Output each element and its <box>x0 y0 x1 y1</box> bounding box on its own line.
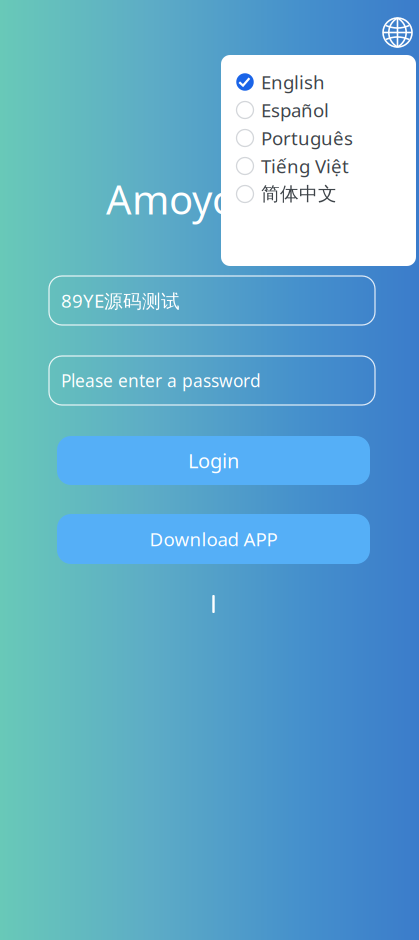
staticText: Español <box>261 98 329 122</box>
button[interactable]: Español <box>236 96 404 124</box>
staticText: Login <box>188 447 239 474</box>
staticText: Tiếng Việt <box>261 154 349 178</box>
staticText: 简体中文 <box>261 182 337 205</box>
button[interactable]: Language <box>379 14 416 51</box>
button[interactable]: 简体中文 <box>236 180 404 208</box>
staticText: Please enter a password <box>61 369 261 392</box>
button[interactable]: Português <box>236 124 404 152</box>
button[interactable]: Download APP <box>0 514 419 564</box>
staticText: Amoyocash <box>106 172 321 225</box>
staticText: Download APP <box>149 527 277 551</box>
staticText: Português <box>261 126 353 150</box>
staticText: 89YE源码测试 <box>61 288 180 313</box>
staticText: English <box>261 70 325 94</box>
button[interactable]: English <box>236 68 404 96</box>
button[interactable]: Tiếng Việt <box>236 152 404 180</box>
button[interactable]: Login <box>0 436 419 485</box>
